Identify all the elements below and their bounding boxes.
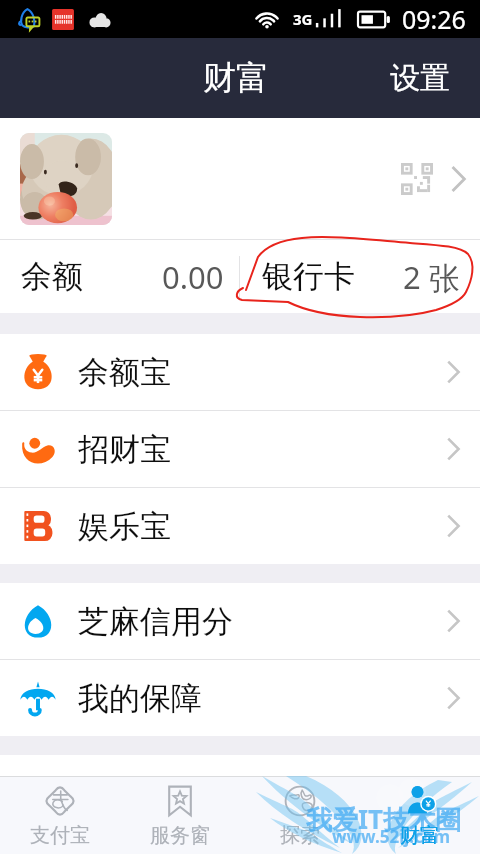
staticText: 余额宝	[78, 353, 171, 392]
button[interactable]: 芝麻信用分	[0, 583, 480, 659]
staticText: 支付宝	[30, 823, 90, 848]
staticText: 芝麻信用分	[78, 602, 233, 641]
button[interactable]: 招财宝	[0, 411, 480, 487]
button[interactable]: My QR code	[396, 158, 438, 200]
button[interactable]: 余额宝	[0, 334, 480, 410]
staticText: 09:26	[402, 2, 466, 36]
button[interactable]: 娱乐宝	[0, 488, 480, 564]
staticText: 设置	[390, 59, 450, 97]
staticText: 财富	[400, 823, 440, 848]
staticText: 娱乐宝	[78, 507, 171, 546]
button[interactable]: My QR code	[0, 118, 480, 239]
button[interactable]: 银行卡	[240, 240, 480, 313]
button[interactable]: 我的保障	[0, 660, 480, 736]
button[interactable]: 余额	[0, 240, 239, 313]
button[interactable]: 服务窗	[120, 777, 240, 854]
staticText: 2 张	[403, 256, 460, 298]
staticText: 银行卡	[262, 257, 355, 296]
button[interactable]: 支付宝	[0, 777, 120, 854]
staticText: 我爱IT技术圈	[306, 801, 462, 837]
staticText: 余额	[21, 257, 83, 296]
staticText: 财富	[400, 823, 440, 848]
staticText: 招财宝	[78, 430, 171, 469]
button[interactable]: 探索	[240, 777, 360, 854]
staticText: www.52ij.com	[332, 825, 451, 848]
staticText: 探索	[280, 823, 320, 848]
staticText: 我的保障	[78, 679, 202, 718]
staticText: 3G	[293, 9, 313, 29]
staticText: 服务窗	[150, 823, 210, 848]
staticText: 财富	[203, 57, 269, 99]
staticText: 0.00	[162, 256, 224, 298]
button[interactable]: 财富	[360, 777, 480, 854]
button[interactable]: 设置	[371, 43, 480, 113]
